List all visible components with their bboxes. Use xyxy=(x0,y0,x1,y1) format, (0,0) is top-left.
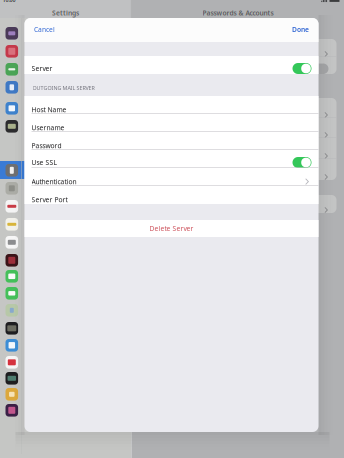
staticText: OUTGOING MAIL SERVER xyxy=(32,84,94,92)
button[interactable]: Username xyxy=(24,114,318,132)
staticText: Username xyxy=(31,123,64,132)
button[interactable]: Use SSL xyxy=(24,150,318,168)
button[interactable]: Delete Server xyxy=(24,220,318,237)
button[interactable]: Host Name xyxy=(24,96,318,114)
staticText: 10:00 xyxy=(2,0,15,4)
staticText: Done xyxy=(292,25,309,34)
staticText: Host Name xyxy=(31,105,66,114)
staticText: Password xyxy=(31,141,61,150)
staticText: Delete Server xyxy=(149,224,193,233)
staticText: Settings xyxy=(52,9,79,17)
staticText: Use SSL xyxy=(31,158,56,167)
staticText: Server Port xyxy=(31,195,67,204)
button[interactable]: Done xyxy=(292,24,318,35)
button[interactable]: Password xyxy=(24,132,318,150)
staticText: Cancel xyxy=(34,25,55,34)
button[interactable]: Authentication xyxy=(24,168,318,186)
button[interactable]: Cancel xyxy=(24,24,55,35)
button[interactable]: Server Port xyxy=(24,186,318,204)
staticText: Authentication xyxy=(31,177,76,186)
button[interactable]: Server xyxy=(24,56,318,74)
staticText: Server xyxy=(31,64,52,73)
staticText: Passwords & Accounts xyxy=(202,9,273,17)
